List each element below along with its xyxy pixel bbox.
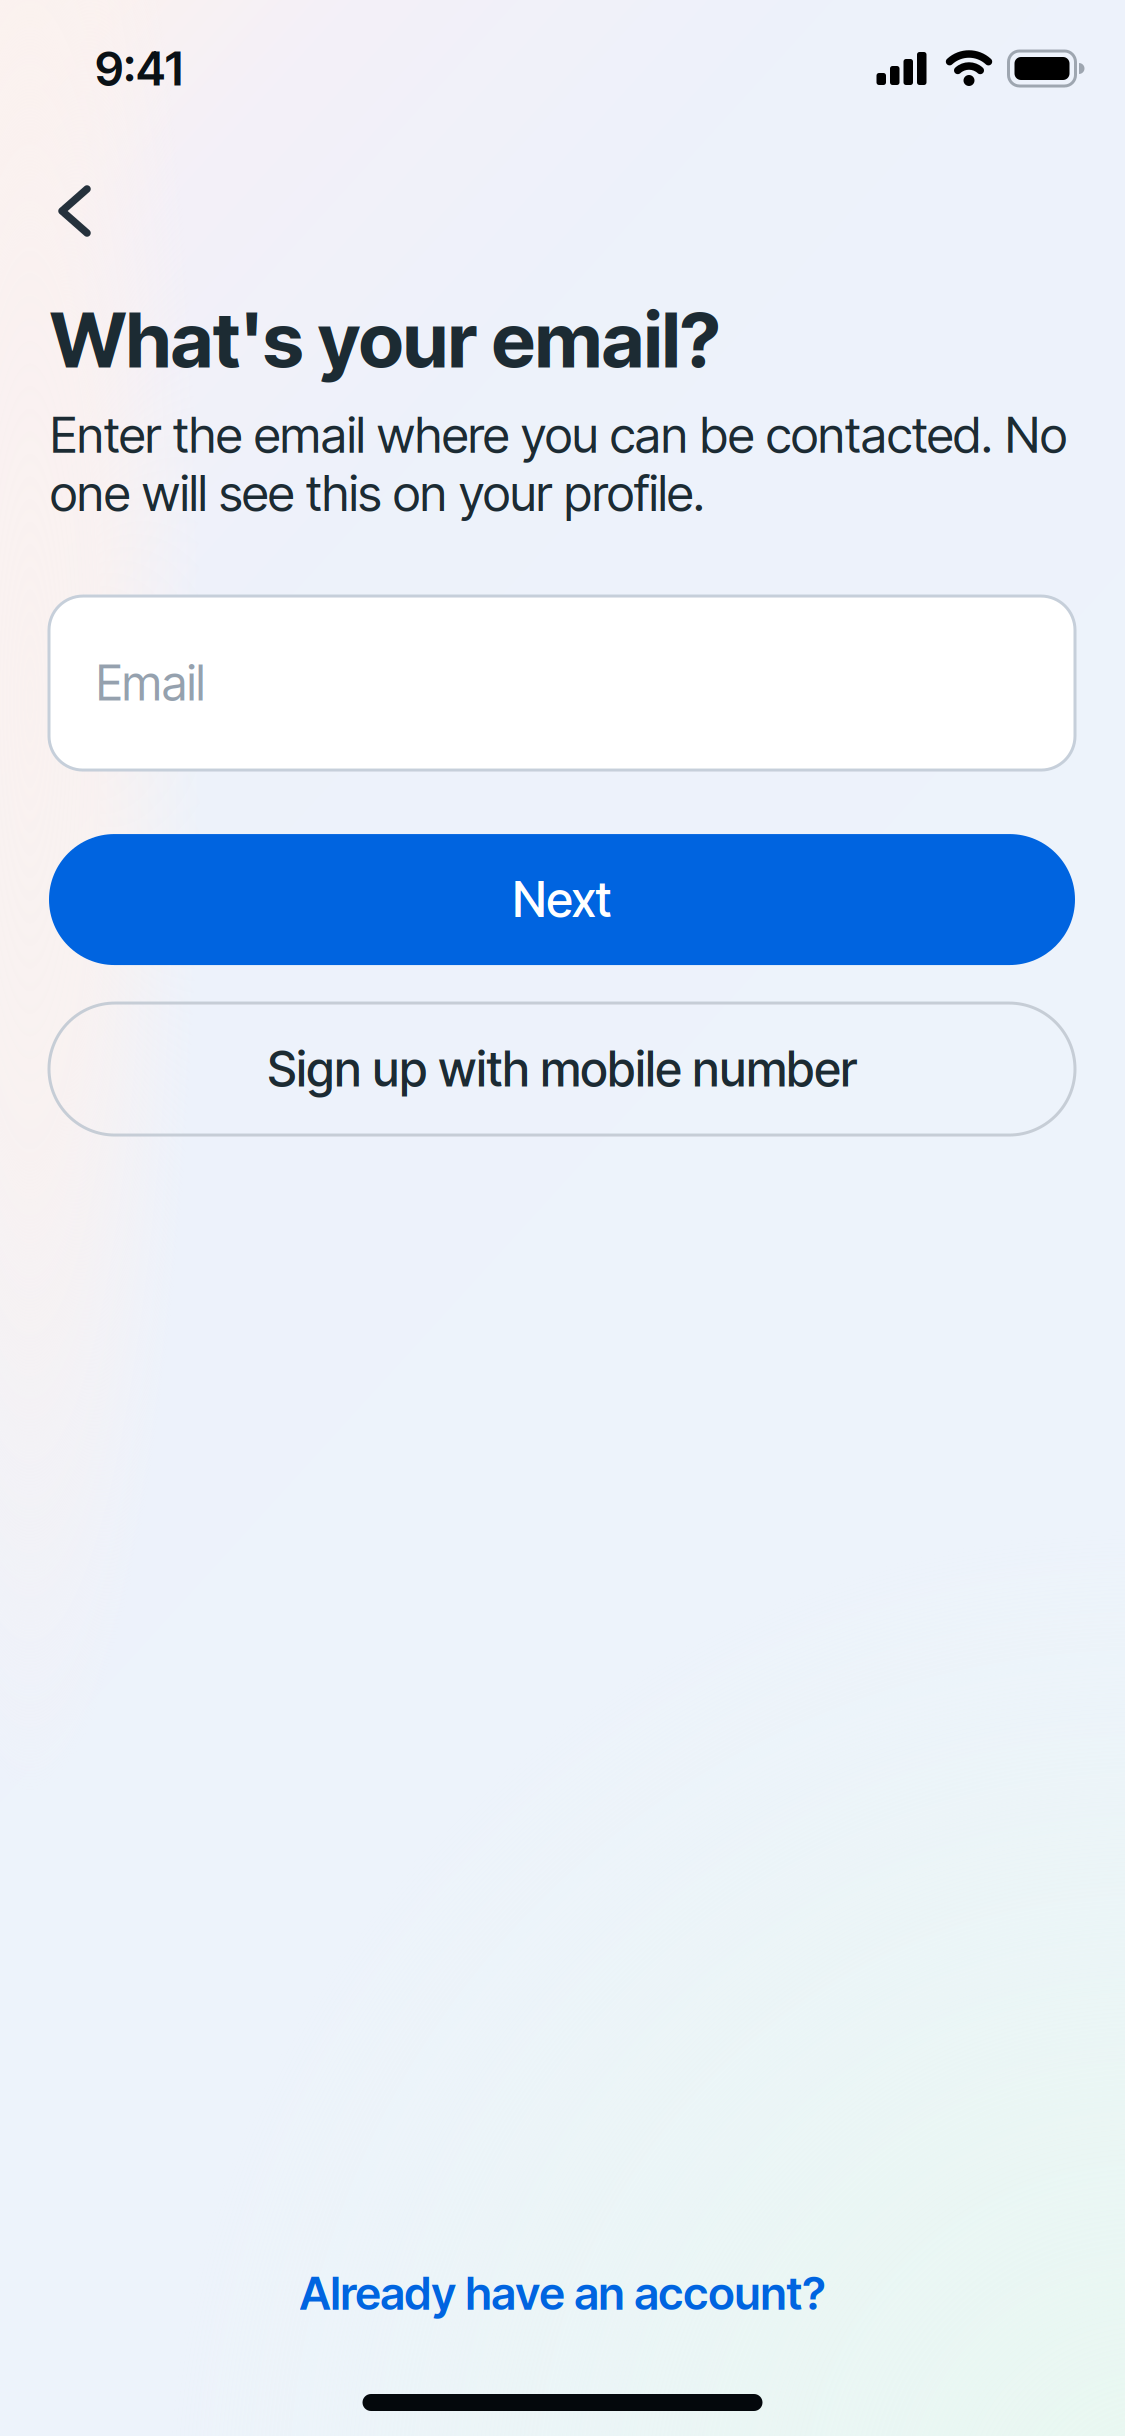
staticText: Email [96, 655, 205, 711]
staticText: Enter the email where you can be contact… [50, 406, 1067, 522]
button[interactable]: Email [49, 596, 1075, 770]
staticText: What's your email? [50, 295, 720, 385]
staticText: Already have an account? [299, 2266, 825, 2320]
button[interactable]: Back [0, 140, 125, 280]
staticText: Next [512, 871, 611, 928]
staticText: Sign up with mobile number [267, 1041, 856, 1097]
button[interactable]: Already have an account? [299, 2266, 825, 2320]
button[interactable]: Sign up with mobile number [49, 1003, 1075, 1135]
staticText: 9:41 [95, 41, 183, 96]
button[interactable]: Next [49, 834, 1075, 965]
